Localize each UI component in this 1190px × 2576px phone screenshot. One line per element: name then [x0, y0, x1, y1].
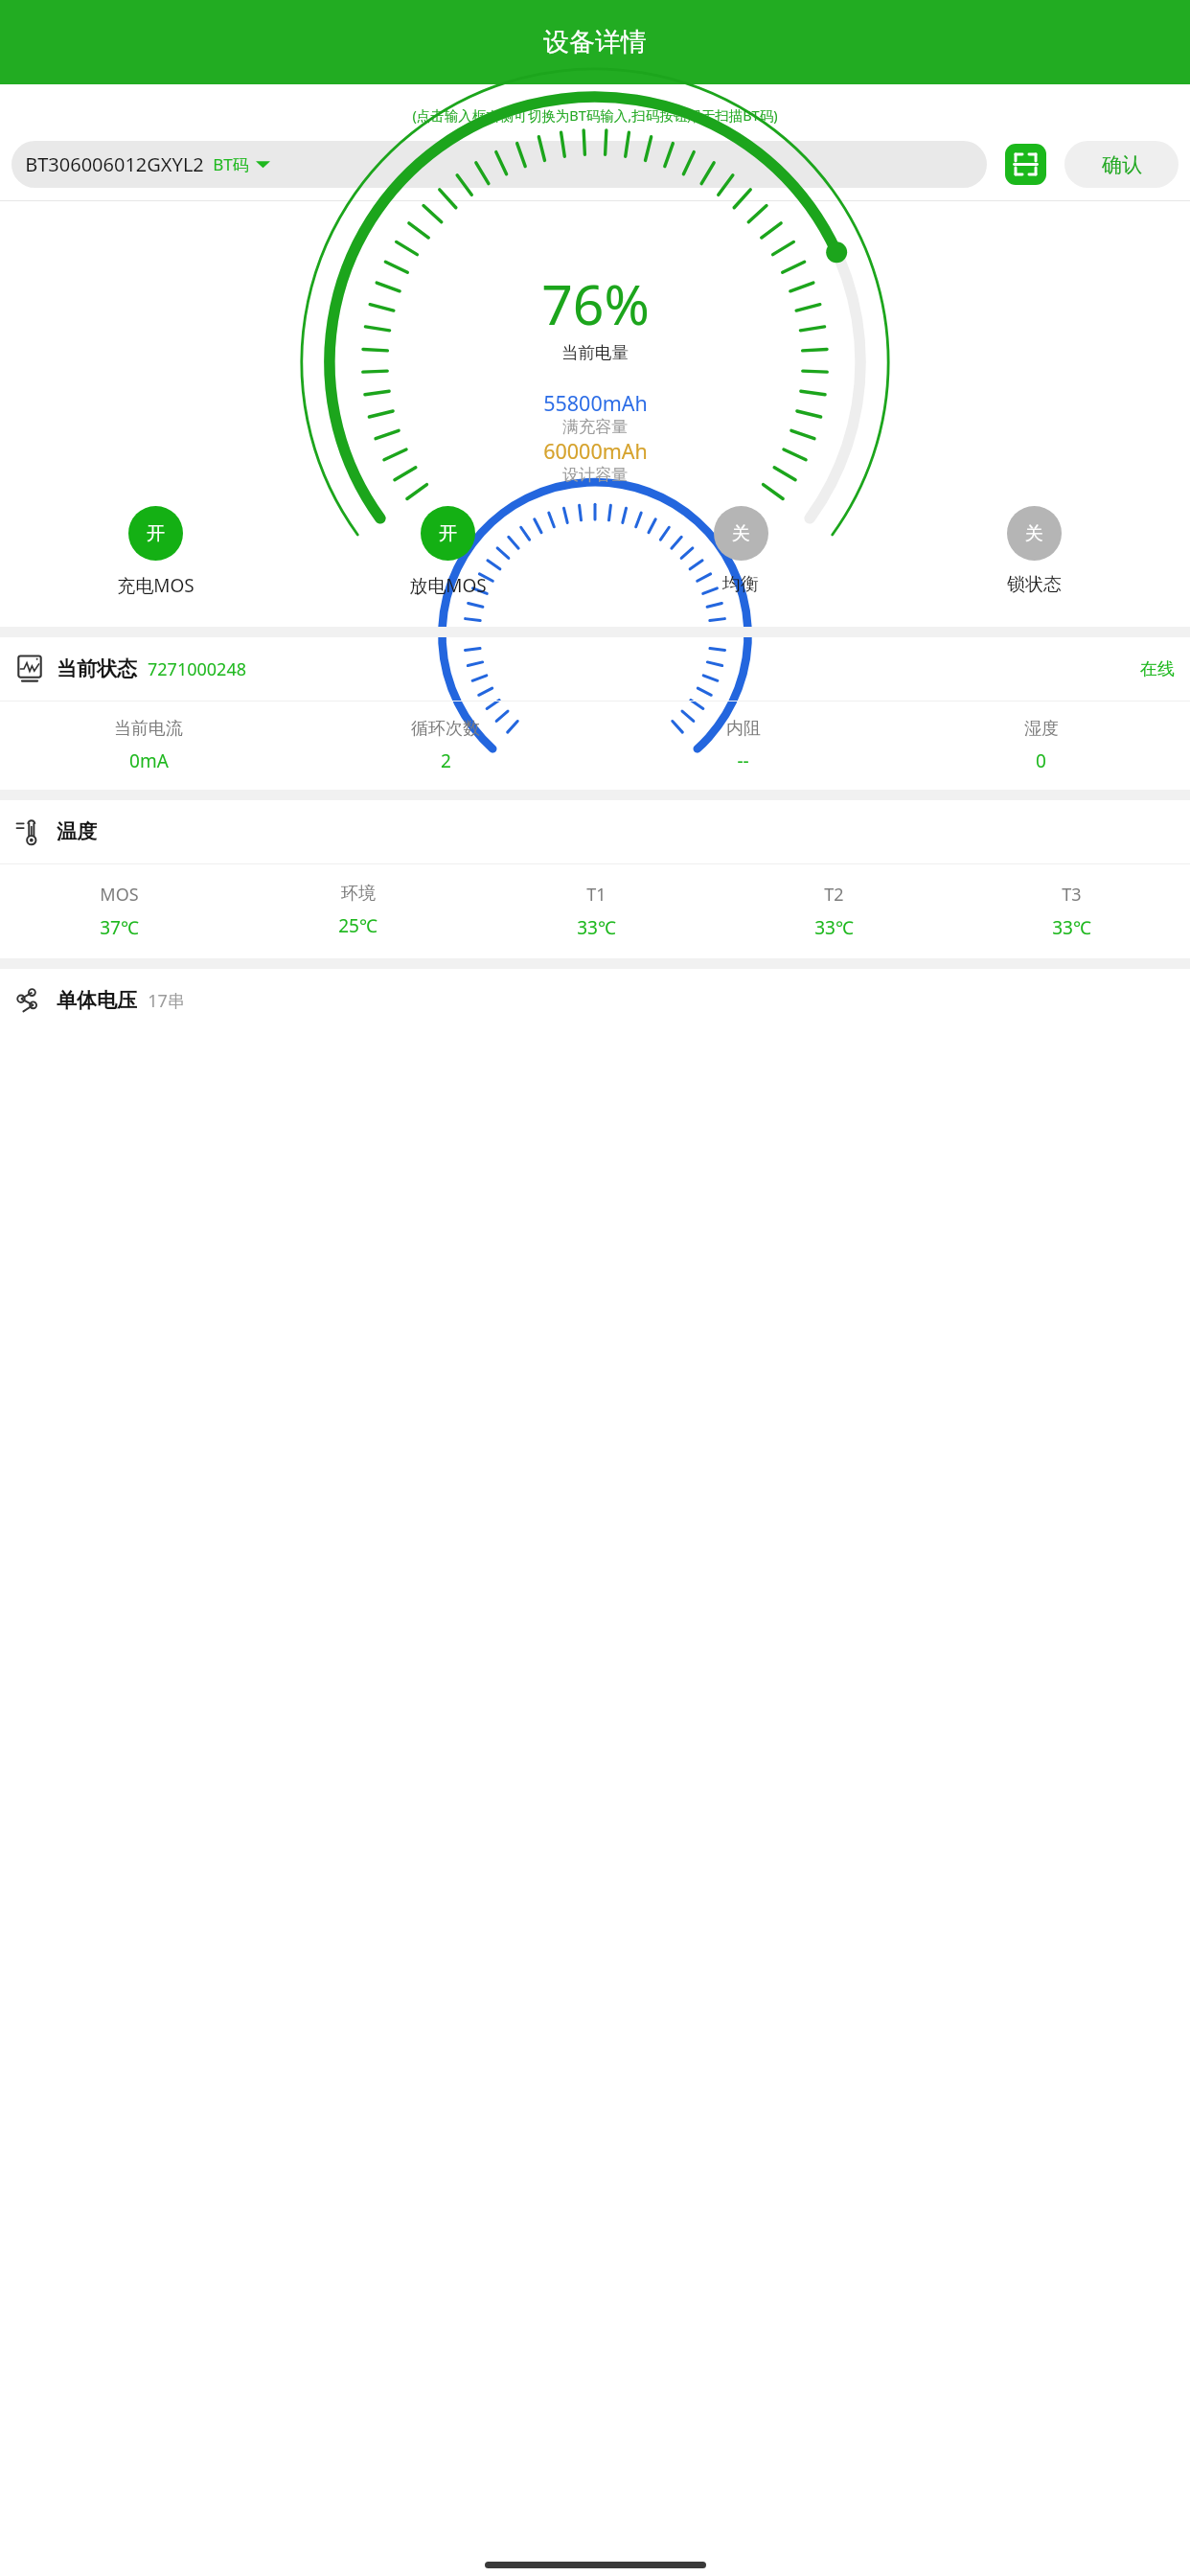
button[interactable]: 开	[10, 506, 302, 598]
staticText: 当前电流	[114, 718, 183, 740]
staticText: 33℃	[1052, 915, 1091, 940]
button[interactable]: 确认	[1064, 141, 1179, 188]
staticText: 关	[732, 522, 750, 545]
staticText: 37℃	[100, 915, 139, 940]
staticText: 锁状态	[1007, 573, 1062, 596]
staticText: 7271000248	[148, 657, 246, 681]
staticText: 76%	[541, 266, 650, 341]
staticText: 满充容量	[562, 417, 628, 437]
staticText: 设计容量	[562, 465, 628, 485]
staticText: BT码	[213, 153, 249, 175]
staticText: 湿度	[1024, 718, 1059, 740]
staticText: T2	[824, 883, 844, 907]
button[interactable]: BT306006012GXYL2	[11, 141, 987, 188]
button[interactable]: 开	[302, 506, 594, 598]
staticText: 17串	[148, 989, 185, 1013]
staticText: 关	[1025, 522, 1043, 545]
staticText: 55800mAh	[543, 389, 648, 417]
staticText: T1	[586, 883, 606, 907]
staticText: 环境	[341, 883, 376, 905]
staticText: 均衡	[722, 573, 759, 596]
button[interactable]: 单体电压	[0, 969, 1190, 1032]
staticText: 0mA	[129, 748, 169, 773]
button[interactable]: 关	[887, 506, 1180, 596]
staticText: BT306006012GXYL2	[25, 151, 204, 177]
staticText: 确认	[1102, 152, 1142, 177]
staticText: 2	[441, 748, 451, 773]
staticText: 设备详情	[543, 26, 647, 58]
staticText: 温度	[57, 819, 97, 844]
staticText: 循环次数	[411, 718, 480, 740]
staticText: 33℃	[814, 915, 854, 940]
staticText: 单体电压	[57, 988, 137, 1013]
staticText: MOS	[100, 883, 139, 907]
button[interactable]: 当前状态	[0, 637, 1190, 701]
staticText: 在线	[1140, 658, 1175, 680]
staticText: (点击输入框右侧可切换为BT码输入,扫码按钮用于扫描BT码)	[412, 105, 778, 125]
staticText: 当前状态	[57, 656, 137, 681]
staticText: T3	[1062, 883, 1082, 907]
staticText: 33℃	[577, 915, 616, 940]
staticText: --	[737, 748, 749, 773]
staticText: 0	[1036, 748, 1046, 773]
button[interactable]: 温度	[0, 800, 1190, 863]
staticText: 开	[439, 522, 457, 545]
staticText: 25℃	[338, 913, 378, 938]
staticText: 60000mAh	[543, 437, 648, 465]
button[interactable]: 关	[594, 506, 887, 596]
staticText: 开	[147, 522, 165, 545]
staticText: 放电MOS	[409, 573, 487, 598]
staticText: 充电MOS	[117, 573, 195, 598]
button[interactable]: 扫描BT码	[1005, 144, 1046, 185]
staticText: 内阻	[726, 718, 761, 740]
staticText: 当前电量	[561, 342, 629, 363]
